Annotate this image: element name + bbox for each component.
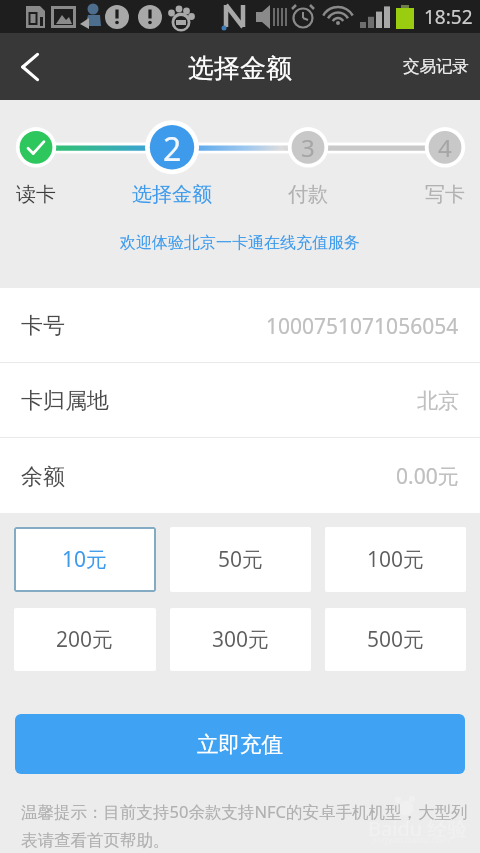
staticText: 余额 — [21, 463, 65, 491]
staticText: 3 — [301, 131, 315, 164]
button[interactable]: 交易记录 — [390, 33, 480, 100]
button[interactable]: 500元 — [325, 608, 466, 671]
staticText: 读卡 — [16, 182, 56, 207]
staticText: 0.00元 — [396, 462, 459, 491]
staticText: 写卡 — [425, 182, 465, 207]
button[interactable]: 100元 — [325, 527, 466, 592]
staticText: 100元 — [367, 545, 425, 574]
staticText: 北京 — [417, 388, 459, 414]
staticText: 立即充值 — [197, 731, 283, 758]
staticText: 欢迎体验北京一卡通在线充值服务 — [120, 233, 360, 253]
button[interactable]: Back — [0, 33, 60, 100]
button[interactable]: 卡号 — [0, 288, 480, 362]
staticText: 卡号 — [21, 312, 65, 340]
staticText: 300元 — [212, 625, 270, 654]
staticText: 1000751071056054 — [266, 312, 459, 341]
staticText: 200元 — [56, 625, 114, 654]
staticText: 4 — [438, 131, 452, 164]
button[interactable]: 余额 — [0, 438, 480, 513]
staticText: 2 — [163, 127, 182, 171]
button[interactable]: 50元 — [170, 527, 311, 592]
button[interactable]: 300元 — [170, 608, 311, 671]
button[interactable]: 立即充值 — [15, 714, 465, 774]
staticText: 选择金额 — [188, 52, 292, 85]
button[interactable]: 200元 — [14, 608, 156, 671]
staticText: 18:52 — [424, 4, 473, 30]
staticText: 500元 — [367, 625, 425, 654]
staticText: 交易记录 — [403, 56, 469, 77]
staticText: Baidu 经验 — [368, 815, 468, 842]
button[interactable]: 卡归属地 — [0, 363, 480, 437]
staticText: 10元 — [62, 545, 108, 574]
staticText: 付款 — [288, 182, 328, 207]
staticText: 温馨提示：目前支持50余款支持NFC的安卓手机机型，大型列表请查看首页帮助。 — [21, 800, 476, 851]
button[interactable]: 10元 — [14, 527, 156, 592]
staticText: 卡归属地 — [21, 387, 109, 415]
staticText: 50元 — [218, 545, 264, 574]
staticText: 选择金额 — [132, 182, 212, 207]
